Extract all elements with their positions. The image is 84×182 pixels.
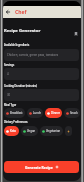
button[interactable]: Save recipe — [72, 30, 80, 38]
button[interactable]: Vegetarian — [40, 126, 63, 136]
button[interactable]: Keto — [4, 126, 19, 136]
staticText: 30 — [7, 93, 11, 97]
staticText: Vegetarian — [46, 129, 61, 133]
staticText: Generate Recipe — [25, 165, 53, 170]
staticText: Servings — [4, 63, 15, 66]
staticText: Recipe Generator — [4, 28, 41, 34]
staticText: Dinner — [51, 111, 60, 115]
button[interactable]: Lunch — [27, 108, 43, 118]
staticText: Dietary Preferences — [4, 120, 28, 123]
staticText: Vegan — [27, 129, 36, 133]
staticText: Cooking Duration (minutes) — [4, 84, 38, 87]
staticText: Chicken, carrots, green peas, tomatoes — [7, 53, 59, 57]
button[interactable]: 30 — [4, 89, 79, 101]
button[interactable]: Back — [4, 8, 12, 16]
button[interactable]: Dinner — [45, 108, 62, 118]
button[interactable]: Breakfast — [4, 108, 25, 118]
button[interactable] — [65, 126, 72, 136]
staticText: Keto — [10, 129, 17, 133]
staticText: Meal Type — [4, 103, 17, 106]
staticText: Snack — [70, 111, 78, 115]
button[interactable]: Chicken, carrots, green peas, tomatoes — [4, 49, 79, 61]
staticText: Available Ingredients — [4, 43, 30, 46]
staticText: Chef — [15, 9, 27, 16]
button[interactable]: Generate Recipe — [4, 161, 79, 173]
button[interactable]: Vegan — [21, 126, 38, 136]
button[interactable]: Snack — [64, 108, 80, 118]
staticText: 4 — [7, 72, 9, 76]
staticText: Lunch — [33, 111, 41, 115]
staticText: Breakfast — [10, 111, 23, 115]
